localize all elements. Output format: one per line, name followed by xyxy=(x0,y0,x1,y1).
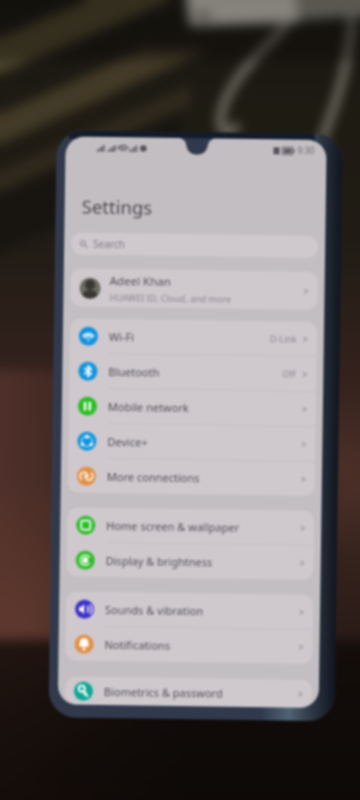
button[interactable]: Mobile network xyxy=(69,388,316,426)
staticText: Notifications xyxy=(104,637,171,653)
staticText: More connections xyxy=(107,469,200,485)
button[interactable]: Device+ xyxy=(68,423,316,461)
button[interactable]: Adeel Khan xyxy=(70,268,318,310)
button[interactable]: Notifications xyxy=(65,626,313,664)
staticText: HUAWEI ID, Cloud, and more xyxy=(109,291,231,305)
staticText: Off xyxy=(282,367,296,380)
staticText: D-Link xyxy=(270,332,297,345)
staticText: Search xyxy=(93,237,125,251)
button[interactable]: Bluetooth xyxy=(69,353,317,391)
button[interactable]: More connections xyxy=(68,458,315,496)
staticText: 9:30 xyxy=(297,145,315,157)
staticText: Device+ xyxy=(107,434,148,450)
button[interactable]: Display & brightness xyxy=(66,542,314,580)
staticText: Wi-Fi xyxy=(109,329,135,344)
staticText: Settings xyxy=(81,194,153,220)
button[interactable]: Wi-Fi xyxy=(70,318,317,356)
staticText: Biometrics & password xyxy=(104,684,223,701)
button[interactable]: Home screen & wallpaper xyxy=(67,507,314,545)
button[interactable]: Biometrics & password xyxy=(65,676,312,708)
staticText: Bluetooth xyxy=(108,364,160,380)
staticText: Adeel Khan xyxy=(109,273,172,290)
button[interactable]: Search xyxy=(71,232,318,258)
button[interactable]: Sounds & vibration xyxy=(66,591,313,629)
staticText: Sounds & vibration xyxy=(105,602,204,618)
staticText: Home screen & wallpaper xyxy=(106,518,239,535)
staticText: Mobile network xyxy=(108,399,189,415)
staticText: Display & brightness xyxy=(106,553,213,569)
